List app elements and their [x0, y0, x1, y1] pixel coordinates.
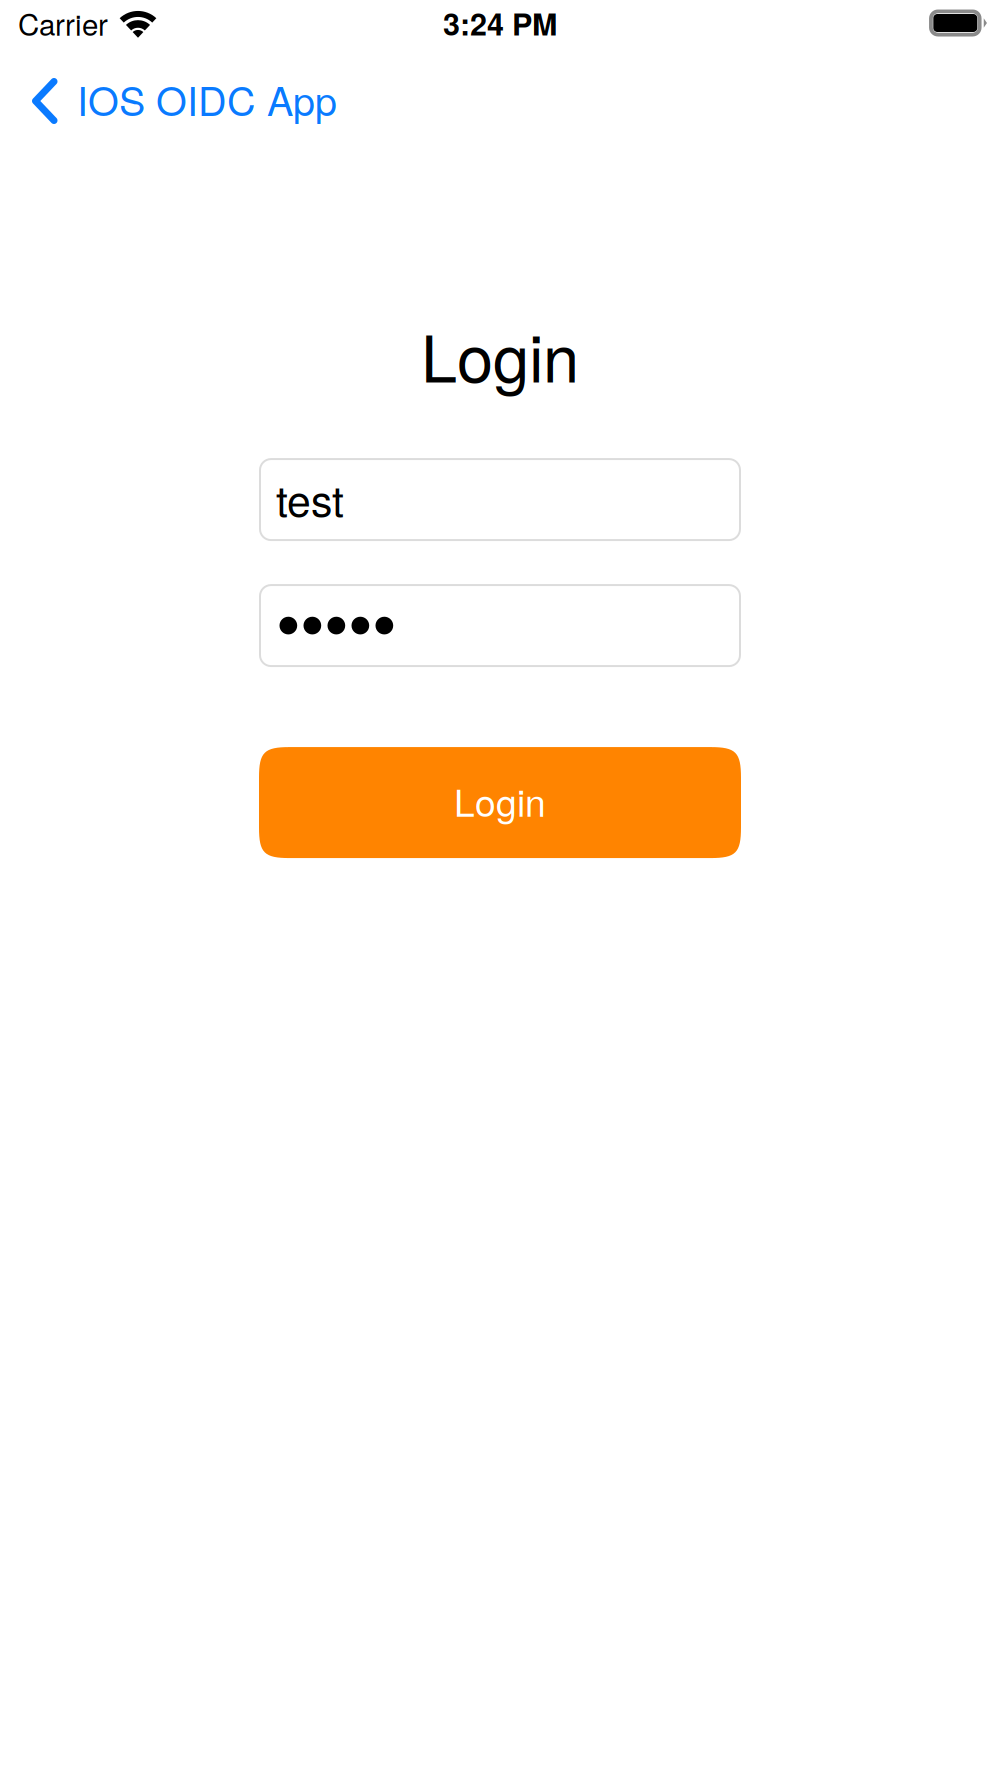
button[interactable]: Back to IOS OIDC App [0, 55, 359, 143]
button[interactable]: Login [259, 747, 741, 858]
staticText: Carrier [18, 2, 108, 44]
staticText: test [276, 467, 344, 529]
staticText: 3:24 PM [443, 1, 557, 45]
staticText: IOS OIDC App [77, 71, 337, 127]
staticText: Login [454, 774, 546, 827]
staticText: Login [421, 308, 579, 401]
